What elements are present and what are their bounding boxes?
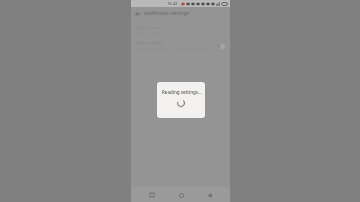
button[interactable]: Back: [202, 188, 216, 202]
button[interactable]: Back: [131, 7, 144, 20]
staticText: Reading settings…: [162, 89, 202, 95]
staticText: 15:42: [167, 1, 178, 6]
button[interactable]: Toggle setting: [216, 43, 225, 49]
button[interactable]: Home: [174, 188, 188, 202]
staticText: Additional settings: [144, 10, 189, 17]
button[interactable]: Recents: [145, 188, 159, 202]
